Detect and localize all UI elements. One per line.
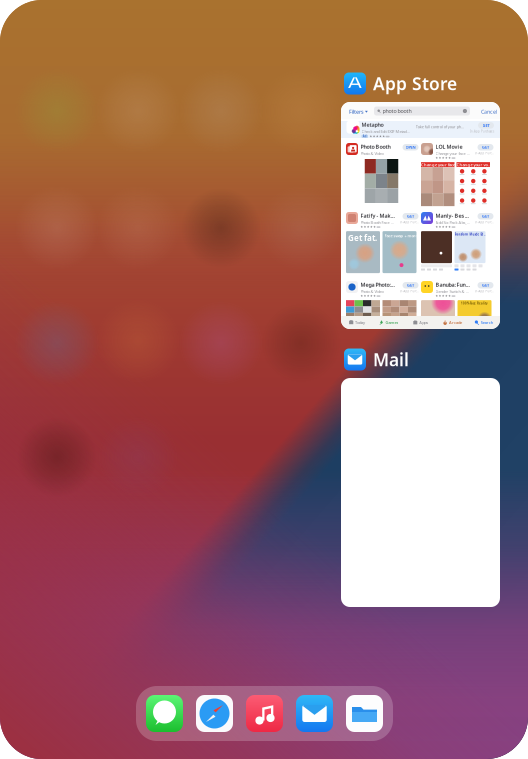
staticText: Get fat. — [348, 233, 377, 243]
staticText: Banuba: Funny Face Swa… — [435, 281, 469, 288]
staticText: App Store — [373, 72, 457, 95]
staticText: Search — [481, 320, 494, 325]
button[interactable]: GET — [477, 213, 493, 219]
staticText: Photo & Video — [360, 151, 383, 156]
staticText: photo booth — [383, 107, 412, 115]
staticText: Mega Photo: Real-Time E… — [360, 281, 394, 288]
staticText: In-App Purchases — [470, 130, 494, 133]
staticText: Today — [355, 320, 365, 325]
button[interactable]: Safari — [196, 695, 233, 732]
staticText: Apps — [419, 320, 428, 325]
button[interactable]: photo booth — [374, 106, 470, 115]
staticText: GET — [482, 283, 489, 288]
staticText: Change your face + voice — [435, 151, 469, 156]
button[interactable]: Games — [373, 316, 405, 329]
button[interactable]: GET — [477, 144, 493, 150]
staticText: Gender Switch & Voice Changer — [435, 289, 469, 294]
button[interactable]: Banuba: Funny Face Swa… — [421, 281, 492, 297]
button[interactable]: LOL Movie — [421, 143, 492, 159]
button[interactable]: Messages — [146, 695, 183, 732]
staticText: GET — [482, 214, 489, 219]
staticText: Arcade — [449, 320, 462, 325]
button[interactable]: GET — [477, 282, 493, 288]
staticText: Change your face — [421, 162, 454, 167]
button[interactable]: Today — [341, 316, 373, 329]
button[interactable]: GET — [402, 213, 418, 219]
button[interactable]: Mail — [296, 695, 333, 732]
button[interactable]: Filters — [349, 108, 368, 115]
staticText: Take full control of your photo's metada… — [416, 124, 465, 129]
staticText: Change your voice — [456, 162, 490, 167]
staticText: GET — [407, 283, 414, 288]
staticText: LOL Movie — [435, 143, 462, 150]
button[interactable]: Photo Booth — [346, 143, 417, 156]
staticText: Games — [385, 320, 398, 325]
button[interactable]: GET — [402, 282, 418, 288]
staticText: GET — [482, 145, 489, 150]
button[interactable]: Arcade — [436, 316, 468, 329]
staticText: Face swap + more — [384, 233, 417, 238]
button[interactable]: Apps — [405, 316, 436, 329]
staticText: Photo & Video — [360, 289, 383, 294]
staticText: Mail — [373, 348, 409, 371]
staticText: In-App Purchases — [399, 289, 418, 293]
staticText: GET — [482, 123, 489, 128]
staticText: In-App Purchases — [474, 289, 493, 293]
button[interactable]: Files — [346, 695, 383, 732]
button[interactable]: Search — [468, 316, 500, 329]
staticText: Photo Booth — [360, 143, 390, 150]
button[interactable]: Metapho — [341, 121, 500, 138]
staticText: Transform Muscle Editor — [454, 233, 485, 236]
staticText: Photo Booth Face App — [360, 220, 394, 225]
button[interactable]: Manly- Best Body Editor — [421, 212, 492, 228]
button[interactable]: OPEN — [402, 144, 418, 150]
staticText: Manly- Best Body Editor — [435, 212, 469, 219]
button[interactable]: Cancel — [481, 108, 497, 115]
staticText: Add Six Pack Abs, Face Retouch — [435, 220, 469, 225]
staticText: Filters — [349, 108, 364, 115]
button[interactable]: App Store — [344, 72, 457, 95]
button[interactable]: GET — [478, 122, 494, 129]
button[interactable]: Fatify - Make Yourself Fat — [346, 212, 417, 228]
staticText: Fatify - Make Yourself Fat — [360, 212, 394, 219]
button[interactable]: Mega Photo: Real-Time E… — [346, 281, 417, 297]
staticText: 100% Face Reality — [461, 302, 488, 305]
button[interactable]: Mail — [344, 348, 409, 371]
staticText: In-App Purchases — [474, 151, 493, 155]
staticText: Ad — [363, 134, 367, 138]
staticText: Metapho — [361, 121, 383, 128]
staticText: Cancel — [481, 108, 497, 115]
button[interactable]: Music — [246, 695, 283, 732]
staticText: OPEN — [405, 145, 415, 150]
staticText: GET — [407, 214, 414, 219]
staticText: Check and Edit EXIF Metadata — [361, 129, 411, 134]
staticText: In-App Purchases — [474, 220, 493, 224]
staticText: In-App Purchases — [399, 220, 418, 224]
